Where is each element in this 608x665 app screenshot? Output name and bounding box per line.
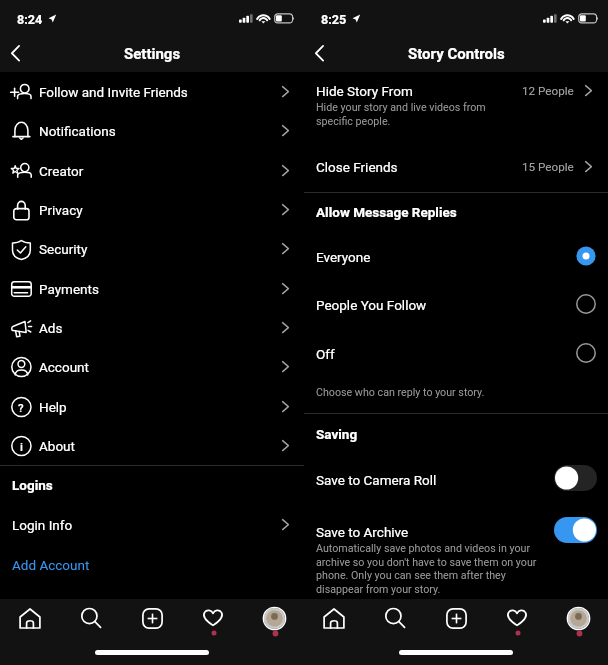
button[interactable]: Back [0,38,30,68]
staticText: Follow and Invite Friends [39,84,188,100]
staticText: 15 People [522,160,574,174]
staticText: 12 People [522,84,574,98]
staticText: Payments [39,281,99,297]
button[interactable]: Home [308,599,360,637]
staticText: Automatically save photos and videos in … [316,542,531,555]
staticText: 8:25 [321,12,347,27]
staticText: Security [39,241,88,257]
button[interactable]: Off [304,330,608,378]
staticText: Allow Message Replies [316,204,457,220]
button[interactable]: Ads [0,308,304,347]
button[interactable]: Activity [491,599,543,637]
button[interactable]: Privacy [0,190,304,229]
button[interactable]: Security [0,229,304,268]
button[interactable]: Back [304,38,334,68]
staticText: ? [18,401,24,414]
button[interactable]: Save to Archive [304,510,608,596]
staticText: Save to Archive [316,524,409,540]
staticText: Logins [12,477,53,493]
staticText: Hide Story From [316,83,413,99]
staticText: Everyone [316,249,371,265]
button[interactable]: Search [65,599,117,637]
staticText: People You Follow [316,297,427,313]
staticText: Help [39,399,67,415]
staticText: phone. Only you can see them after they [316,569,506,582]
button[interactable]: Creator [0,151,304,190]
staticText: About [39,438,75,454]
button[interactable]: Everyone [304,233,608,281]
button[interactable]: Save to Camera Roll [304,458,608,502]
staticText: Creator [39,163,84,179]
staticText: Off [316,346,335,362]
button[interactable]: Account [0,347,304,386]
staticText: Save to Camera Roll [316,472,437,488]
staticText: Notifications [39,123,116,139]
staticText: disappear from your story. [316,583,441,596]
button[interactable]: Home [4,599,56,637]
staticText: 8:24 [17,12,43,27]
button[interactable]: Follow and Invite Friends [0,72,304,111]
staticText: i [20,440,23,453]
staticText: Add Account [12,557,90,573]
staticText: Close Friends [316,159,398,175]
button[interactable]: Hide Story From [304,72,608,148]
staticText: Hide your story and live videos from [316,101,486,114]
staticText: Settings [124,45,181,63]
button[interactable]: Profile [552,599,604,637]
staticText: Privacy [39,202,83,218]
staticText: Choose who can reply to your story. [316,386,485,399]
button[interactable]: ? [0,387,304,426]
button[interactable]: Log Out [0,583,304,622]
button[interactable]: Close Friends [304,148,608,192]
button[interactable]: i [0,426,304,465]
button[interactable]: People You Follow [304,281,608,329]
button[interactable]: Payments [0,269,304,308]
button[interactable]: Search [369,599,421,637]
button[interactable]: Add Account [0,544,304,583]
staticText: Login Info [12,517,73,533]
staticText: Log Out [12,596,60,612]
staticText: specific people. [316,115,391,128]
button[interactable]: Activity [187,599,239,637]
staticText: Ads [39,320,63,336]
staticText: Saving [316,426,358,442]
button[interactable]: Profile [248,599,300,637]
staticText: Account [39,359,89,375]
button[interactable]: Login Info [0,504,304,543]
button[interactable]: New post [126,599,178,637]
staticText: archive so you don't have to save them o… [316,556,537,569]
button[interactable]: New post [430,599,482,637]
staticText: Story Controls [408,45,505,63]
button[interactable]: Notifications [0,111,304,150]
